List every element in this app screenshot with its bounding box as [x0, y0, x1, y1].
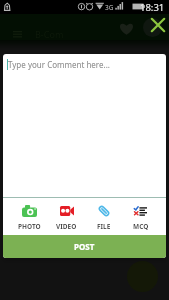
staticText: MCQ	[133, 222, 149, 231]
button[interactable]: Add comment	[127, 261, 158, 292]
staticText: 3G	[105, 3, 114, 12]
staticText: Type your Comment here...	[8, 59, 110, 70]
button[interactable]: POST	[3, 235, 166, 258]
staticText: FILE	[97, 222, 111, 231]
button[interactable]: MCQ	[122, 198, 159, 235]
button[interactable]: VIDEO	[48, 198, 85, 235]
staticText: PHOTO	[18, 222, 41, 231]
button[interactable]: Close	[143, 18, 162, 37]
staticText: VIDEO	[56, 222, 77, 231]
button[interactable]: Favorite	[116, 18, 136, 38]
button[interactable]: PHOTO	[10, 198, 48, 235]
staticText: POST	[74, 241, 95, 252]
button[interactable]: Close	[151, 18, 165, 32]
button[interactable]: Menu	[6, 23, 28, 45]
staticText: 18:31	[140, 1, 165, 14]
button[interactable]: FILE	[85, 198, 122, 235]
